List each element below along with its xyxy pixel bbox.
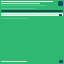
button[interactable] <box>1 13 63 16</box>
button[interactable]: Add <box>59 60 63 63</box>
button[interactable] <box>1 10 63 12</box>
button[interactable]: Profile <box>58 1 63 6</box>
